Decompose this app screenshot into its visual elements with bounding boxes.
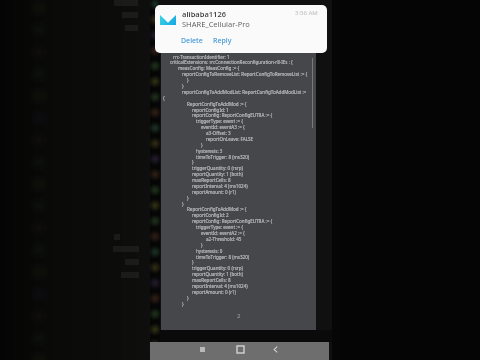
staticText: timeToTrigger: 8 (ms320) bbox=[196, 254, 250, 260]
staticText: reportInterval: 4 (ms1024) bbox=[192, 183, 248, 189]
staticText: } bbox=[201, 242, 203, 248]
staticText: hysteresis: 3 bbox=[196, 148, 223, 154]
staticText: reportConfigId: 1 bbox=[192, 107, 229, 113]
staticText: { bbox=[163, 95, 165, 101]
staticText: a3-Offset: 3 bbox=[206, 130, 231, 136]
staticText: reportAmount: 0 (r1) bbox=[192, 289, 236, 295]
staticText: reportConfigId: 2 bbox=[192, 212, 229, 218]
staticText: triggerType: event := { bbox=[196, 224, 243, 230]
staticText: triggerQuantity: 0 (rsrp) bbox=[192, 165, 243, 171]
staticText: timeToTrigger: 8 (ms320) bbox=[196, 154, 250, 160]
staticText: } bbox=[182, 83, 184, 89]
staticText: maxReportCells: 8 bbox=[192, 177, 231, 183]
staticText: } bbox=[182, 201, 184, 207]
staticText: rrc-TransactionIdentifier: 1 bbox=[173, 54, 230, 60]
staticText: Reply bbox=[213, 36, 232, 46]
staticText: a2-Threshold: 45 bbox=[206, 236, 242, 242]
staticText: eventId: eventA2 := { bbox=[201, 230, 245, 236]
staticText: ReportConfigToAddMod := { bbox=[187, 101, 247, 107]
staticText: reportQuantity: 1 (both) bbox=[192, 171, 243, 177]
staticText: reportConfigToRemoveList: ReportConfigTo… bbox=[182, 71, 308, 77]
staticText: 3:56 AM bbox=[295, 9, 318, 17]
staticText: reportConfigToAddModList: ReportConfigTo… bbox=[182, 89, 307, 95]
button[interactable]: Back bbox=[268, 342, 282, 356]
staticText: } bbox=[192, 159, 194, 165]
staticText: ReportConfigToAddMod := { bbox=[187, 206, 247, 212]
staticText: SHARE_Cellular-Pro bbox=[182, 19, 250, 29]
staticText: alibaba1126 bbox=[182, 9, 226, 19]
staticText: criticalExtensions: rrcConnectionReconfi… bbox=[170, 59, 293, 65]
staticText: hysteresis: 0 bbox=[196, 248, 223, 254]
button[interactable]: alibaba1126 bbox=[155, 5, 327, 53]
staticText: } bbox=[187, 295, 189, 301]
staticText: 2 bbox=[237, 312, 241, 320]
staticText: reportInterval: 4 (ms1024) bbox=[192, 283, 248, 289]
button[interactable]: Recent apps bbox=[195, 342, 209, 356]
staticText: reportOnLeave: FALSE bbox=[206, 136, 254, 142]
button[interactable]: Reply bbox=[210, 34, 235, 48]
staticText: } bbox=[201, 142, 203, 148]
staticText: } bbox=[187, 195, 189, 201]
staticText: reportConfig: ReportConfigEUTRA := { bbox=[192, 112, 273, 118]
staticText: reportConfig: ReportConfigEUTRA := { bbox=[192, 218, 273, 224]
staticText: maxReportCells: 8 bbox=[192, 277, 231, 283]
staticText: } bbox=[187, 77, 189, 83]
staticText: triggerQuantity: 0 (rsrp) bbox=[192, 265, 243, 271]
staticText: } bbox=[182, 301, 184, 307]
staticText: reportQuantity: 1 (both) bbox=[192, 271, 243, 277]
staticText: } bbox=[192, 259, 194, 265]
staticText: eventId: eventA3 := { bbox=[201, 124, 245, 130]
staticText: triggerType: event := { bbox=[196, 118, 243, 124]
staticText: Delete bbox=[181, 36, 203, 46]
button[interactable]: Home bbox=[233, 342, 247, 356]
button[interactable]: Delete bbox=[178, 34, 206, 48]
staticText: reportAmount: 0 (r1) bbox=[192, 189, 236, 195]
staticText: measConfig: MeasConfig := { bbox=[178, 65, 240, 71]
